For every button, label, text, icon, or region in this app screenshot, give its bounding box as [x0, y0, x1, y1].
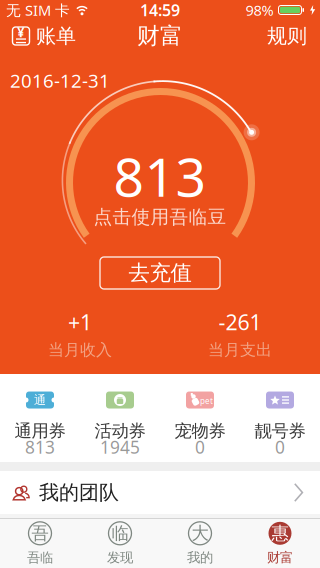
staticText: 惠: [271, 523, 288, 544]
staticText: 0: [275, 435, 285, 458]
staticText: 我的团队: [39, 480, 119, 505]
staticText: -261: [218, 308, 261, 336]
staticText: 1945: [100, 435, 140, 458]
button[interactable]: ¥: [0, 24, 76, 48]
button[interactable]: 813: [85, 140, 235, 240]
staticText: 去充值: [128, 260, 191, 286]
staticText: 0: [195, 435, 205, 458]
button[interactable]: 吾: [0, 519, 80, 568]
button[interactable]: 通: [0, 374, 80, 462]
staticText: pet: [200, 396, 213, 406]
staticText: 2016-12-31: [10, 68, 110, 93]
staticText: 14:59: [140, 0, 180, 21]
button[interactable]: pet: [160, 374, 240, 462]
staticText: 宠物券: [174, 420, 225, 442]
staticText: 通用券: [14, 420, 65, 442]
button[interactable]: 我的团队: [0, 471, 320, 514]
staticText: 当月支出: [208, 340, 272, 360]
staticText: 活动券: [94, 420, 145, 442]
button[interactable]: 规则: [267, 24, 320, 48]
staticText: 当月收入: [48, 340, 112, 360]
button[interactable]: 去充值: [100, 257, 220, 289]
button[interactable]: 大: [160, 519, 240, 568]
staticText: 靓号券: [254, 420, 305, 442]
button[interactable]: 惠: [240, 519, 320, 568]
button[interactable]: 活动券: [80, 374, 160, 462]
staticText: 财富: [137, 22, 183, 50]
staticText: ¥: [17, 23, 25, 41]
staticText: 规则: [267, 24, 307, 48]
staticText: 我的: [187, 549, 213, 566]
staticText: 吾: [31, 523, 48, 544]
staticText: 点击使用吾临豆: [93, 205, 226, 228]
staticText: 通: [34, 393, 46, 407]
staticText: 吾临: [27, 549, 53, 566]
staticText: 临: [111, 523, 128, 544]
staticText: 813: [25, 435, 55, 458]
staticText: 财富: [267, 549, 293, 566]
staticText: 813: [113, 141, 206, 211]
button[interactable]: 靓号券: [240, 374, 320, 462]
staticText: 大: [191, 523, 208, 544]
staticText: +1: [68, 308, 92, 336]
staticText: 发现: [107, 549, 133, 566]
staticText: 98%: [245, 0, 273, 20]
staticText: 账单: [36, 24, 76, 48]
button[interactable]: 临: [80, 519, 160, 568]
staticText: 无 SIM 卡: [6, 0, 70, 20]
